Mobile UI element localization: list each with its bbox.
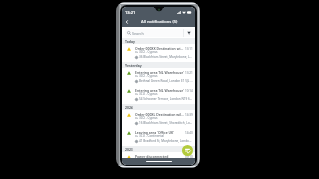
button[interactable]: Leaving area 'Office UK' xyxy=(122,128,195,146)
staticText: 3CO - Cyprus xyxy=(139,158,158,162)
staticText: Search xyxy=(132,31,144,36)
staticText: All notifications (5) xyxy=(141,19,178,25)
button[interactable]: Power disconnected xyxy=(122,152,195,158)
button[interactable]: Mark all as read xyxy=(182,145,193,156)
button[interactable]: Entering area 'NL Warehouse' xyxy=(122,68,195,86)
staticText: Yesterday xyxy=(125,63,142,68)
button[interactable]: Order 000XX Destination will be... xyxy=(122,44,195,62)
staticText: 54 Schooner Terrace, London N19 6NE, UK xyxy=(139,97,193,101)
staticText: Entering area 'NL Warehouse' xyxy=(135,88,184,93)
staticText: 14:40 xyxy=(185,131,193,135)
staticText: 3CO - Cyprus xyxy=(139,116,158,120)
staticText: 14:39 xyxy=(185,113,193,117)
staticText: Leaving area 'Office UK' xyxy=(135,130,184,135)
staticText: 2024 xyxy=(125,105,133,110)
staticText: 10:14 xyxy=(185,89,193,93)
button[interactable]: Order 000XL Destination will be... xyxy=(122,110,195,128)
button[interactable]: Search xyxy=(125,29,194,37)
staticText: 41 Bradford St, Marylebone, London W1U .… xyxy=(139,139,193,143)
staticText: Bethnal Green Road, London E1 5JL UK xyxy=(139,79,193,83)
staticText: 3CU - Cyprus xyxy=(139,92,158,96)
staticText: 2023 xyxy=(125,147,133,152)
staticText: Entering area 'NL Warehouse' xyxy=(135,70,184,75)
staticText: Order 000XL Destination will be... xyxy=(135,112,184,117)
staticText: 09:10 xyxy=(185,155,193,159)
staticText: 13:21 xyxy=(125,10,136,15)
staticText: 3CO - Cyprus xyxy=(139,74,158,78)
button[interactable]: Back xyxy=(122,17,131,27)
staticText: Today xyxy=(125,39,135,44)
button[interactable]: Entering area 'NL Warehouse' xyxy=(122,86,195,104)
staticText: 3CU - Continental xyxy=(139,134,165,138)
staticText: 13:11 xyxy=(185,47,193,51)
staticText: 36 Blackfriars Street, Marylebone, Londo… xyxy=(139,55,193,59)
staticText: 3CO - Cyprus xyxy=(139,50,158,54)
staticText: Power disconnected xyxy=(135,154,184,159)
staticText: 13:21 xyxy=(185,71,193,75)
staticText: Order 000XX Destination will be... xyxy=(135,46,184,51)
button[interactable]: Filter xyxy=(184,29,194,37)
staticText: 16 Blackfriars Street, Shoreditch, Londo… xyxy=(139,121,193,125)
